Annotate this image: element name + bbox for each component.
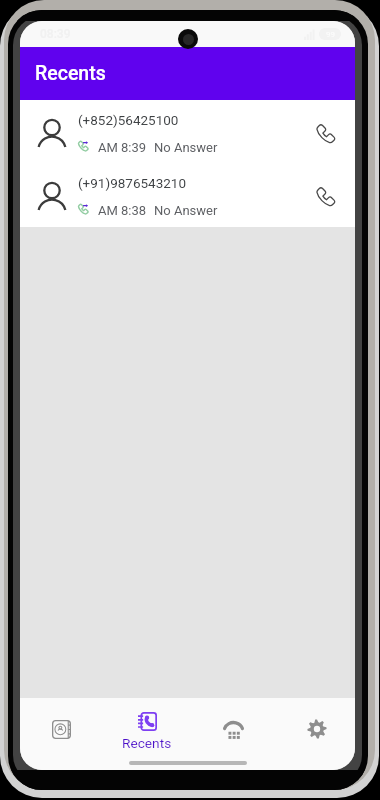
staticText: AM 8:39 xyxy=(98,140,147,155)
staticText: Recents xyxy=(35,62,106,85)
button[interactable]: Call xyxy=(304,111,348,155)
button[interactable]: Dialpad xyxy=(187,698,271,756)
staticText: (+91)9876543210 xyxy=(78,175,187,191)
button[interactable]: Settings xyxy=(271,698,355,756)
staticText: AM 8:38 xyxy=(98,203,147,218)
staticText: 99 xyxy=(326,30,335,39)
staticText: No Answer xyxy=(154,203,218,218)
staticText: (+852)56425100 xyxy=(78,112,179,128)
staticText: 08:39 xyxy=(40,27,71,41)
button[interactable]: Contacts xyxy=(20,698,103,756)
button[interactable]: Recents xyxy=(103,698,187,756)
staticText: Recents xyxy=(122,735,172,751)
staticText: No Answer xyxy=(154,140,218,155)
button[interactable]: Call xyxy=(304,174,348,218)
button[interactable]: (+852)56425100 xyxy=(20,101,355,164)
button[interactable]: (+91)9876543210 xyxy=(20,164,355,227)
